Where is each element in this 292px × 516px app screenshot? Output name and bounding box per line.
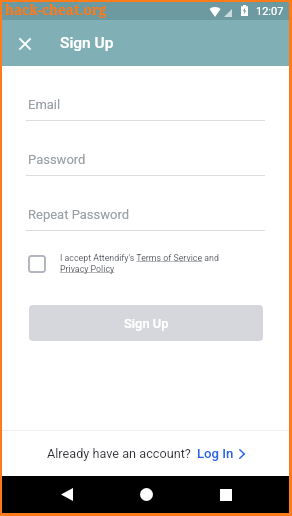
staticText: Already have an account?: [47, 446, 191, 461]
staticText: Repeat Password: [28, 207, 130, 222]
staticText: Password: [28, 152, 86, 167]
button[interactable]: I accept Attendify's Terms of Service an…: [28, 255, 46, 273]
button[interactable]: Home: [127, 476, 165, 513]
staticText: hack-cheat.org: [5, 1, 107, 19]
button[interactable]: Recent apps: [207, 476, 245, 513]
staticText: Sign Up: [60, 34, 114, 52]
button[interactable]: Back: [48, 476, 86, 513]
staticText: 12:07: [256, 5, 284, 18]
button[interactable]: Log In: [197, 446, 245, 461]
staticText: I accept Attendify's Terms of Service an…: [60, 253, 222, 274]
staticText: Sign Up: [124, 316, 169, 331]
staticText: Log In: [197, 446, 234, 461]
button[interactable]: Sign Up: [29, 305, 263, 341]
staticText: Email: [28, 97, 61, 112]
button[interactable]: Close: [13, 31, 37, 55]
